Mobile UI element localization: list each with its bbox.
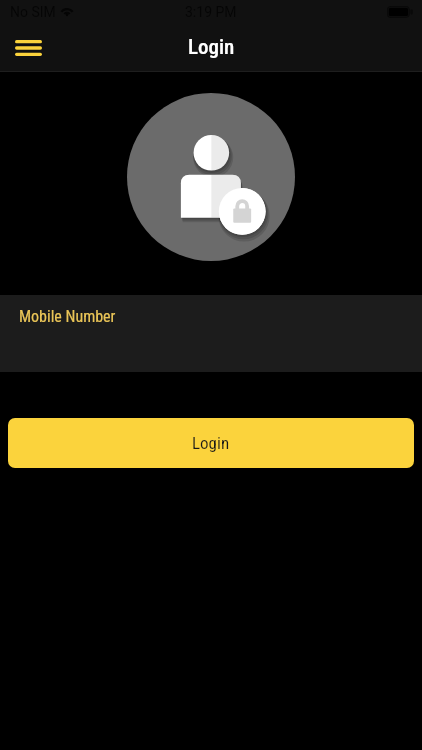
button[interactable]: Open navigation menu: [6, 26, 50, 70]
staticText: 3:19 PM: [185, 4, 237, 20]
staticText: Login: [188, 35, 235, 60]
staticText: Mobile Number: [19, 307, 116, 326]
button[interactable]: Login: [8, 418, 414, 468]
staticText: No SIM: [10, 4, 56, 20]
staticText: Login: [192, 433, 230, 453]
button[interactable]: Mobile Number: [0, 295, 422, 372]
